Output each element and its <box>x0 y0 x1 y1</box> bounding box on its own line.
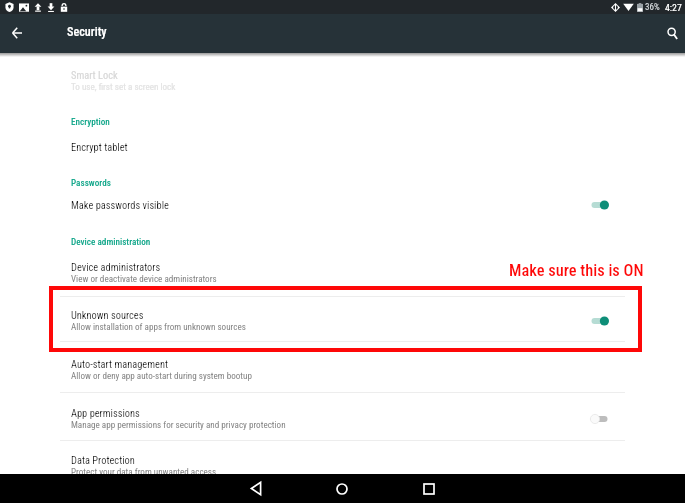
staticText: 36% <box>645 2 660 13</box>
staticText: 4:27 <box>665 2 682 13</box>
staticText: View or deactivate device administrators <box>71 274 217 285</box>
staticText: Allow installation of apps from unknown … <box>71 322 246 333</box>
button[interactable]: Auto-start management <box>0 346 685 394</box>
button[interactable]: Make passwords visible <box>0 191 685 219</box>
button[interactable]: Data Protection <box>0 442 685 490</box>
button[interactable]: App permissions <box>0 395 685 443</box>
staticText: Allow or deny app auto-start during syst… <box>71 371 252 382</box>
staticText: Smart Lock <box>71 69 118 81</box>
button[interactable]: Search <box>659 20 685 46</box>
staticText: Make sure this is ON <box>509 261 644 280</box>
button[interactable]: Device administrators <box>0 249 685 297</box>
staticText: Device administration <box>71 236 151 247</box>
staticText: Device administrators <box>71 261 161 273</box>
button[interactable]: Navigate up <box>4 20 30 46</box>
staticText: Auto-start management <box>71 358 169 370</box>
staticText: Make passwords visible <box>71 199 583 211</box>
staticText: Unknown sources <box>71 309 144 321</box>
staticText: Protect your data from unwanted access <box>71 467 217 478</box>
button[interactable]: Unknown sources <box>0 297 685 345</box>
staticText: Manage app permissions for security and … <box>71 420 286 431</box>
staticText: Passwords <box>71 177 111 188</box>
staticText: Data Protection <box>71 454 135 466</box>
staticText: App permissions <box>71 407 140 419</box>
button[interactable]: Smart Lock <box>0 57 685 105</box>
button[interactable]: Off <box>583 408 609 430</box>
button[interactable]: On <box>583 310 609 332</box>
staticText: Encrypt tablet <box>71 141 609 153</box>
staticText: To use, first set a screen lock <box>71 82 176 93</box>
staticText: Encryption <box>71 116 110 127</box>
button[interactable]: On <box>583 194 609 216</box>
button[interactable]: Recent apps <box>409 474 449 503</box>
button[interactable]: Back <box>236 474 276 503</box>
staticText: Security <box>67 25 107 39</box>
button[interactable]: Encrypt tablet <box>0 133 685 161</box>
button[interactable]: Home <box>322 474 362 503</box>
